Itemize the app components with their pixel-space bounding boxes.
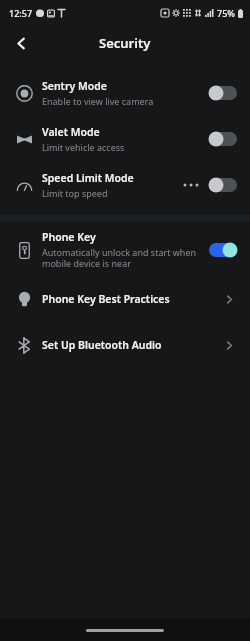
staticText: Valet Mode (42, 125, 100, 139)
button[interactable]: Toggle on (206, 240, 240, 260)
staticText: 75% (217, 7, 235, 19)
button[interactable]: Phone Key (0, 224, 250, 276)
button[interactable]: Toggle off (206, 83, 240, 103)
button[interactable]: Sentry Mode (0, 70, 250, 116)
button[interactable]: Toggle off (206, 175, 240, 195)
button[interactable]: More options (180, 174, 202, 196)
button[interactable]: Set Up Bluetooth Audio (0, 322, 250, 368)
staticText: Enable to view live camera (42, 95, 154, 107)
staticText: Phone Key (42, 230, 96, 244)
button[interactable]: Phone Key Best Practices (0, 276, 250, 322)
staticText: 12:57 (9, 7, 33, 19)
button[interactable]: Back (6, 28, 36, 58)
button[interactable]: Speed Limit Mode (0, 162, 250, 208)
staticText: Automatically unlock and start when mobi… (42, 246, 206, 270)
button[interactable]: Phone Key Best Practices (218, 288, 240, 310)
staticText: Sentry Mode (42, 79, 107, 93)
staticText: Phone Key Best Practices (42, 292, 170, 306)
button[interactable]: Set Up Bluetooth Audio (218, 334, 240, 356)
staticText: Speed Limit Mode (42, 171, 134, 185)
staticText: Limit top speed (42, 187, 108, 199)
staticText: Limit vehicle access (42, 141, 125, 153)
button[interactable]: Toggle off (206, 129, 240, 149)
staticText: Security (99, 34, 151, 52)
staticText: Set Up Bluetooth Audio (42, 338, 162, 352)
button[interactable]: Valet Mode (0, 116, 250, 162)
